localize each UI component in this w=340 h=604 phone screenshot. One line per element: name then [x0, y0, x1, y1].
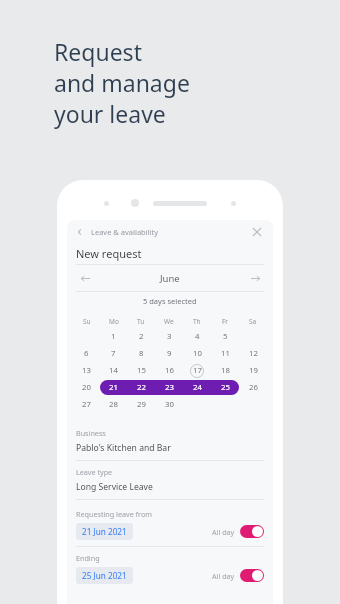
- staticText: Ending: [76, 553, 100, 563]
- staticText: 18: [221, 365, 230, 376]
- staticText: 22: [137, 382, 146, 393]
- button[interactable]: 22: [127, 379, 155, 396]
- button[interactable]: 8: [127, 345, 155, 362]
- button[interactable]: 9: [155, 345, 183, 362]
- staticText: New request: [76, 246, 142, 261]
- button[interactable]: 24: [183, 379, 211, 396]
- staticText: June: [160, 272, 180, 285]
- button[interactable]: 11: [211, 345, 239, 362]
- staticText: 21 Jun 2021: [82, 526, 127, 537]
- staticText: Leave & availability: [91, 227, 159, 237]
- staticText: 25 Jun 2021: [82, 570, 127, 581]
- staticText: Pablo's Kitchen and Bar: [76, 442, 171, 454]
- staticText: 14: [109, 365, 118, 376]
- button[interactable]: 21 Jun 2021: [76, 523, 133, 540]
- button[interactable]: 17: [183, 362, 211, 379]
- staticText: 15: [137, 365, 146, 376]
- button[interactable]: Leave & availability: [67, 220, 273, 243]
- staticText: Su: [83, 317, 91, 326]
- staticText: 21: [109, 382, 118, 393]
- staticText: 7: [111, 348, 116, 359]
- button[interactable]: 6: [73, 345, 100, 362]
- staticText: 23: [165, 382, 174, 393]
- button[interactable]: 25: [211, 379, 239, 396]
- button[interactable]: All day toggle: [240, 569, 264, 582]
- staticText: Business: [76, 428, 106, 438]
- button[interactable]: 27: [73, 396, 100, 413]
- button[interactable]: 16: [155, 362, 183, 379]
- staticText: 20: [82, 382, 91, 393]
- staticText: 5 days selected: [143, 296, 197, 306]
- button[interactable]: 23: [155, 379, 183, 396]
- staticText: All day: [212, 571, 235, 581]
- staticText: 28: [109, 399, 118, 410]
- button[interactable]: 4: [183, 328, 211, 345]
- button[interactable]: 15: [127, 362, 155, 379]
- staticText: 2: [139, 331, 144, 342]
- staticText: Tu: [137, 317, 145, 326]
- staticText: 19: [249, 365, 258, 376]
- button[interactable]: 25 Jun 2021: [76, 567, 133, 584]
- button[interactable]: Leave type: [67, 461, 273, 499]
- staticText: Long Service Leave: [76, 481, 153, 493]
- button[interactable]: 12: [239, 345, 267, 362]
- button[interactable]: 21: [100, 379, 127, 396]
- staticText: 24: [193, 382, 202, 393]
- button[interactable]: 10: [183, 345, 211, 362]
- staticText: 10: [193, 348, 202, 359]
- staticText: Requesting leave from: [76, 509, 152, 519]
- staticText: 27: [82, 399, 91, 410]
- button[interactable]: 20: [73, 379, 100, 396]
- button[interactable]: 13: [73, 362, 100, 379]
- staticText: 17: [193, 365, 202, 376]
- staticText: 4: [195, 331, 200, 342]
- button[interactable]: 7: [100, 345, 127, 362]
- button[interactable]: 1: [100, 328, 127, 345]
- button[interactable]: Business: [67, 422, 273, 460]
- staticText: 11: [221, 348, 230, 359]
- staticText: 1: [111, 331, 116, 342]
- staticText: All day: [212, 527, 235, 537]
- button[interactable]: Close: [250, 225, 264, 239]
- staticText: 5: [223, 331, 228, 342]
- staticText: Request: [54, 36, 142, 67]
- staticText: 3: [167, 331, 172, 342]
- staticText: 16: [165, 365, 174, 376]
- staticText: Th: [193, 317, 201, 326]
- button[interactable]: 29: [127, 396, 155, 413]
- staticText: Sa: [249, 317, 257, 326]
- button[interactable]: 5: [211, 328, 239, 345]
- staticText: 26: [249, 382, 258, 393]
- staticText: your leave: [54, 98, 166, 129]
- staticText: and manage: [54, 67, 190, 98]
- button[interactable]: 30: [155, 396, 183, 413]
- staticText: 9: [167, 348, 172, 359]
- button[interactable]: 19: [239, 362, 267, 379]
- button[interactable]: 28: [100, 396, 127, 413]
- staticText: 12: [249, 348, 258, 359]
- button[interactable]: Next month: [247, 270, 263, 286]
- button[interactable]: 14: [100, 362, 127, 379]
- staticText: We: [164, 317, 174, 326]
- staticText: Fr: [222, 317, 229, 326]
- button[interactable]: All day toggle: [240, 525, 264, 538]
- button[interactable]: Previous month: [77, 270, 93, 286]
- staticText: 6: [84, 348, 89, 359]
- button[interactable]: 2: [127, 328, 155, 345]
- staticText: Leave type: [76, 467, 113, 477]
- button[interactable]: 18: [211, 362, 239, 379]
- staticText: 8: [139, 348, 144, 359]
- staticText: Mo: [109, 317, 119, 326]
- button[interactable]: 26: [239, 379, 267, 396]
- staticText: 29: [137, 399, 146, 410]
- button[interactable]: 3: [155, 328, 183, 345]
- staticText: 25: [221, 382, 230, 393]
- staticText: 13: [82, 365, 91, 376]
- staticText: 30: [165, 399, 174, 410]
